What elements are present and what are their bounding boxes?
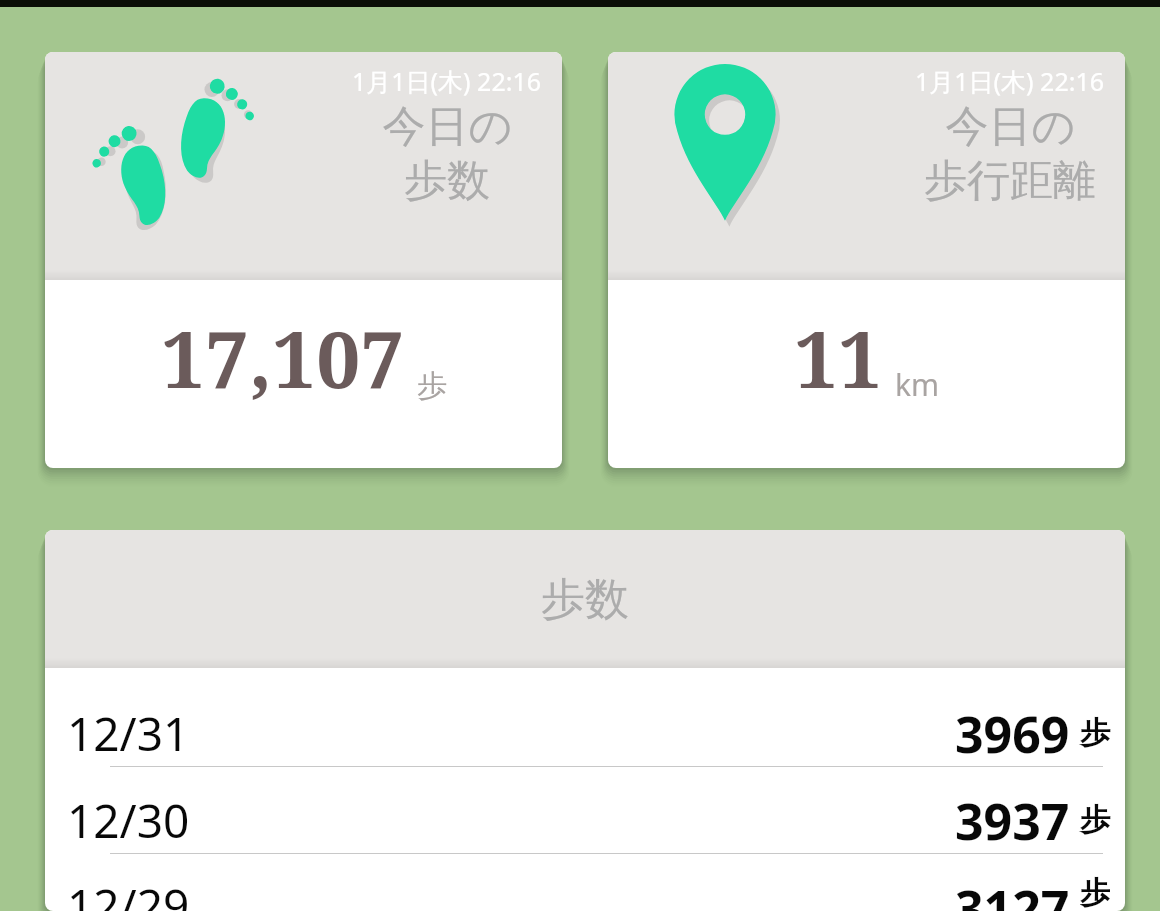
staticText: 3969 bbox=[955, 700, 1070, 766]
staticText: 12/30 bbox=[67, 789, 190, 852]
staticText: 歩数 bbox=[541, 572, 629, 627]
staticText: km bbox=[895, 364, 940, 405]
staticText: 12/31 bbox=[67, 702, 190, 765]
staticText: 歩 bbox=[1080, 714, 1110, 752]
staticText: 歩 bbox=[1080, 874, 1110, 911]
staticText: 17,107 bbox=[161, 305, 405, 411]
staticText: 11 bbox=[794, 305, 883, 411]
staticText: 歩数 bbox=[404, 154, 490, 208]
staticText: 今日の bbox=[382, 100, 513, 154]
staticText: 3127 bbox=[955, 874, 1070, 911]
button[interactable]: 今日の歩行距離 11 km bbox=[608, 52, 1125, 468]
staticText: 歩 bbox=[1080, 801, 1110, 839]
staticText: 今日の bbox=[945, 100, 1076, 154]
button[interactable]: 12/29 bbox=[45, 874, 1125, 911]
button[interactable]: 12/31 bbox=[45, 700, 1125, 787]
staticText: 1月1日(木) 22:16 bbox=[915, 64, 1105, 98]
staticText: 1月1日(木) 22:16 bbox=[352, 64, 542, 98]
staticText: 歩 bbox=[417, 367, 447, 405]
staticText: 12/29 bbox=[67, 874, 190, 911]
button[interactable]: 今日の歩数 17,107 歩 bbox=[45, 52, 562, 468]
staticText: 3937 bbox=[955, 787, 1070, 853]
button[interactable]: 12/30 bbox=[45, 787, 1125, 874]
button[interactable]: 歩数 bbox=[45, 530, 1125, 668]
staticText: 歩行距離 bbox=[924, 154, 1096, 208]
